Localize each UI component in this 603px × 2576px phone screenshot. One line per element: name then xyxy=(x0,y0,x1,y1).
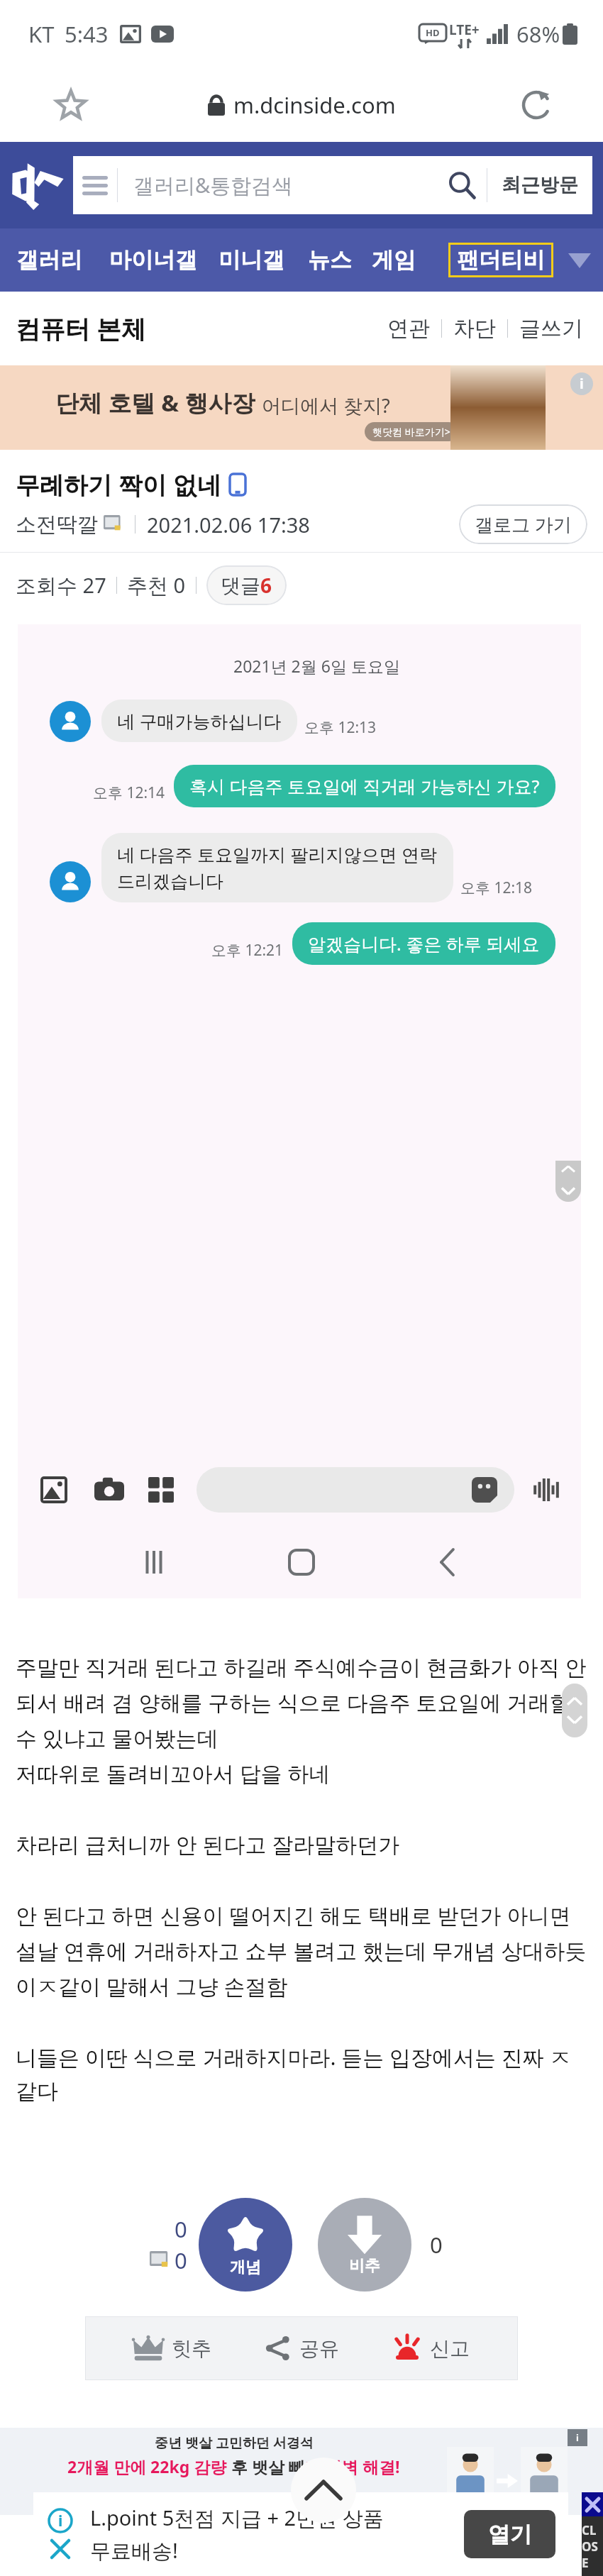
button[interactable]: More menus xyxy=(558,238,602,282)
staticText: 중년 뱃살 고민하던 서경석 xyxy=(155,2433,314,2452)
button[interactable]: 중년 뱃살 고민하던 서경석 xyxy=(0,2428,603,2515)
staticText: 2021.02.06 17:38 xyxy=(147,511,310,538)
button[interactable]: 열기 xyxy=(464,2510,555,2558)
staticText: 오후 12:18 xyxy=(460,878,533,898)
staticText: 갤러리 xyxy=(16,246,82,274)
staticText: i xyxy=(576,2431,579,2444)
staticText: 마이너갤 xyxy=(109,246,197,274)
staticText: 후 뱃살 빼 xyxy=(227,2455,305,2477)
button[interactable]: dcinside home xyxy=(9,157,65,213)
staticText: 설날 연휴에 거래하자고 쇼부 볼려고 했는데 무개념 상대하듯 xyxy=(16,1936,587,1965)
staticText: 오후 12:14 xyxy=(93,783,165,803)
staticText: 뉴스 xyxy=(308,246,352,274)
staticText: 개념 xyxy=(230,2257,261,2277)
button[interactable]: Menu xyxy=(73,156,117,214)
staticText: 2개월 만에 22kg 감량 xyxy=(67,2455,227,2477)
staticText: LTE+ xyxy=(449,21,480,39)
staticText: 컴퓨터 본체 xyxy=(16,311,147,346)
staticText: 네 구매가능하십니다 xyxy=(117,709,282,733)
button[interactable]: 갤러리 xyxy=(16,246,82,274)
staticText: 수 있냐고 물어봤는데 xyxy=(16,1723,218,1752)
button[interactable]: 마이너갤 xyxy=(109,246,197,274)
button[interactable]: 최근방문 xyxy=(487,156,592,214)
staticText: 네 다음주 토요일까지 팔리지않으면 연락 드리겠습니다 xyxy=(117,842,438,893)
staticText: 열기 xyxy=(488,2521,532,2548)
button[interactable]: 게임 xyxy=(372,246,416,274)
staticText: 게임 xyxy=(372,246,416,274)
button[interactable]: 비추 xyxy=(318,2198,411,2292)
staticText: 같다 xyxy=(16,2078,58,2105)
button[interactable]: Bookmark xyxy=(51,85,91,125)
staticText: 무례하기 짝이 없네 xyxy=(16,468,221,501)
staticText: 주말만 직거래 된다고 하길래 주식예수금이 현금화가 아직 안 xyxy=(16,1652,587,1681)
staticText: CLOSE xyxy=(582,2522,603,2571)
button[interactable]: 갤러리&통합검색 xyxy=(118,156,437,214)
staticText: 팬더티비 xyxy=(457,246,545,274)
staticText: 무료배송! xyxy=(90,2536,178,2565)
staticText: 비추 xyxy=(349,2256,380,2276)
button[interactable]: 미니갤 xyxy=(218,246,284,274)
staticText: HD xyxy=(426,26,440,39)
staticText: 오후 12:13 xyxy=(304,717,377,738)
staticText: 0 xyxy=(175,2245,187,2275)
staticText: i xyxy=(58,2511,63,2531)
staticText: m.dcinside.com xyxy=(233,90,396,120)
button[interactable]: Collapse xyxy=(291,2458,356,2523)
button[interactable]: Ad info xyxy=(570,372,593,395)
button[interactable]: 컴퓨터 본체 xyxy=(16,311,147,346)
staticText: 니들은 이딴 식으로 거래하지마라. 듣는 입장에서는 진짜 ㅈ xyxy=(16,2042,571,2072)
staticText: 차라리 급처니까 안 된다고 잘라말하던가 xyxy=(16,1830,400,1859)
staticText: 안 된다고 하면 신용이 떨어지긴 해도 택배로 받던가 아니면 xyxy=(16,1901,571,1930)
staticText: 0 xyxy=(175,2214,187,2244)
button[interactable]: 갤로그 가기 xyxy=(459,504,587,544)
staticText: 6 xyxy=(260,572,272,599)
staticText: 갤러리&통합검색 xyxy=(133,171,293,199)
staticText: 0 xyxy=(430,2230,443,2260)
staticText: 68% xyxy=(516,19,560,49)
staticText: 댓글 xyxy=(221,573,260,598)
staticText: KT xyxy=(28,19,55,49)
staticText: 이ㅈ같이 말해서 그냥 손절함 xyxy=(16,1972,288,2001)
button[interactable]: 공유 xyxy=(260,2335,345,2361)
button[interactable]: 뉴스 xyxy=(308,246,352,274)
button[interactable]: 연관 xyxy=(387,315,430,342)
staticText: 조회수 27 xyxy=(16,571,106,599)
staticText: 최근방문 xyxy=(502,173,578,197)
staticText: 신고 xyxy=(430,2336,470,2361)
button[interactable]: 신고 xyxy=(387,2335,475,2362)
staticText: 저따위로 돌려비꼬아서 답을 하네 xyxy=(16,1759,331,1788)
staticText: 갤로그 가기 xyxy=(475,512,572,537)
staticText: 어디에서 찾지? xyxy=(262,392,390,419)
button[interactable]: 개념 xyxy=(199,2198,292,2292)
staticText: 혹시 다음주 토요일에 직거래 가능하신 가요? xyxy=(189,774,540,798)
button[interactable]: 글쓰기 xyxy=(519,315,583,342)
staticText: i xyxy=(580,375,584,393)
button[interactable]: Search xyxy=(437,160,487,210)
button[interactable]: 댓글 xyxy=(206,565,287,605)
staticText: 5:43 xyxy=(65,19,109,49)
staticText: 글쓰기 xyxy=(519,315,583,342)
staticText: 차단 xyxy=(453,315,496,342)
staticText: L.point 5천점 지급 + 2만원 상품 xyxy=(90,2504,384,2532)
button[interactable]: Close ad xyxy=(582,2492,603,2516)
staticText: 되서 배려 겸 양해를 구하는 식으로 다음주 토요일에 거래할 xyxy=(16,1688,571,1717)
staticText: 단체 호텔 & 행사장 xyxy=(55,387,255,419)
button[interactable]: 팬더티비 xyxy=(448,243,553,277)
staticText: 기 완벽 해결! xyxy=(305,2455,400,2477)
staticText: 힛추 xyxy=(172,2336,211,2361)
button[interactable]: 힛추 xyxy=(128,2335,217,2361)
button[interactable]: 차단 xyxy=(453,315,496,342)
staticText: 햇닷컴 바로가기> xyxy=(372,425,450,438)
staticText: 연관 xyxy=(387,315,430,342)
staticText: 2021년 2월 6일 토요일 xyxy=(233,655,400,677)
staticText: 공유 xyxy=(299,2336,339,2361)
staticText: 알겠습니다. 좋은 하루 되세요 xyxy=(308,932,540,956)
button[interactable]: Reload xyxy=(516,85,556,125)
staticText: 오후 12:21 xyxy=(211,940,284,961)
staticText: 추천 0 xyxy=(127,571,186,599)
staticText: 미니갤 xyxy=(218,246,284,274)
button[interactable]: 단체 호텔 & 행사장 xyxy=(0,365,603,450)
staticText: 소전딱깔 xyxy=(16,512,98,538)
